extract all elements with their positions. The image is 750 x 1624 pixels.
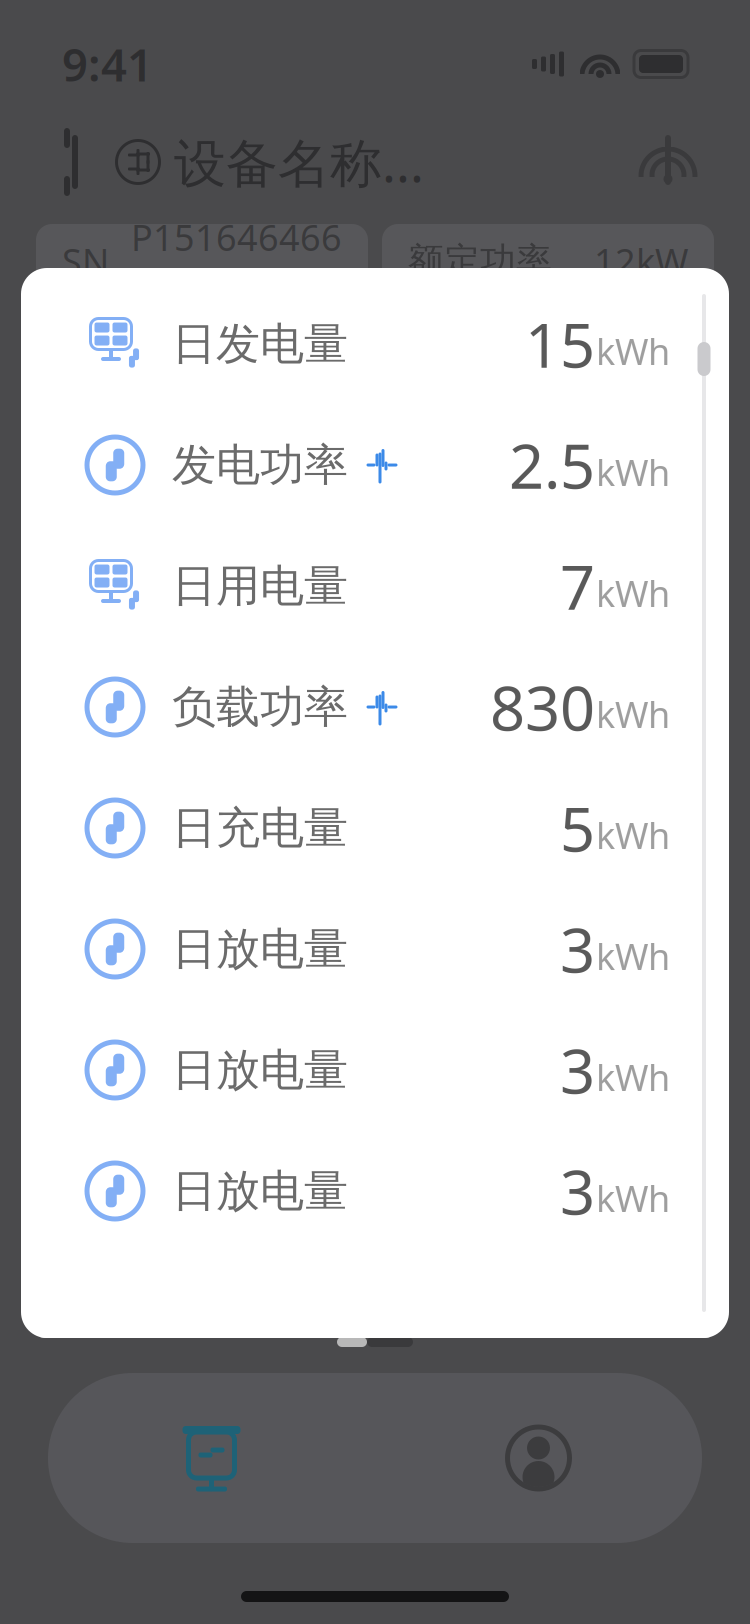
button[interactable]: Wi-Fi disconnected: [638, 134, 750, 190]
staticText: 3: [560, 908, 595, 990]
staticText: 3: [560, 1150, 595, 1232]
button[interactable]: 日充电量: [40, 776, 710, 880]
staticText: 2.5: [509, 424, 595, 506]
staticText: kWh: [596, 448, 670, 496]
button[interactable]: 频率: [267, 1209, 483, 1309]
button[interactable]: 电源: [36, 1209, 253, 1309]
staticText: 日充电量: [172, 801, 348, 855]
button[interactable]: SN: [36, 224, 368, 298]
staticText: kWh: [596, 811, 670, 859]
button[interactable]: 额定功率: [382, 224, 714, 298]
staticText: 日发电量: [172, 317, 348, 371]
staticText: 发电功率: [172, 438, 348, 492]
button[interactable]: 日用电量: [40, 534, 710, 638]
staticText: 日放电量: [172, 1043, 348, 1097]
button[interactable]: 日放电量: [40, 1139, 710, 1243]
staticText: P15164646648: [131, 213, 342, 309]
staticText: 15: [525, 303, 595, 385]
staticText: 3: [560, 1029, 595, 1111]
staticText: 9:41: [62, 34, 153, 94]
staticText: kWh: [596, 569, 670, 617]
staticText: 7: [560, 545, 595, 627]
button[interactable]: 日放电量: [40, 897, 710, 1001]
staticText: 12kW: [594, 237, 688, 285]
button[interactable]: 发电功率: [40, 413, 710, 517]
staticText: 日放电量: [172, 922, 348, 976]
button[interactable]: 日发电量: [40, 292, 710, 396]
staticText: 额定功率: [408, 239, 552, 283]
staticText: kWh: [596, 327, 670, 375]
staticText: kWh: [596, 690, 670, 738]
button[interactable]: 日放电量: [40, 1018, 710, 1122]
staticText: 日放电量: [172, 1164, 348, 1218]
staticText: kWh: [596, 1174, 670, 1222]
staticText: 设备名称...: [174, 127, 424, 197]
staticText: kWh: [596, 1053, 670, 1101]
button[interactable]: 负载功率: [40, 655, 710, 759]
button[interactable]: Profile: [375, 1398, 702, 1518]
staticText: 5: [560, 787, 595, 869]
staticText: 830: [490, 666, 595, 748]
staticText: kWh: [596, 932, 670, 980]
button[interactable]: Back: [0, 132, 100, 192]
button[interactable]: 充电: [497, 1209, 714, 1309]
staticText: 负载功率: [172, 680, 348, 734]
staticText: SN: [62, 237, 109, 285]
button[interactable]: Dashboard: [48, 1398, 375, 1518]
staticText: 日用电量: [172, 559, 348, 613]
